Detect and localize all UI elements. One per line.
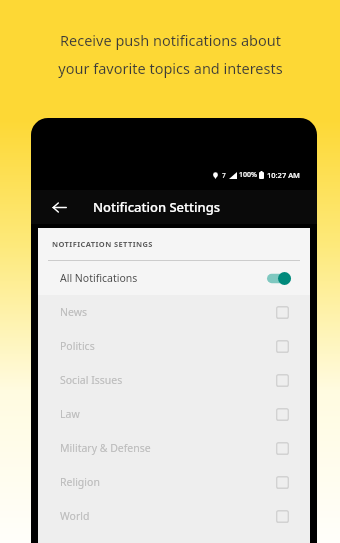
staticText: 7 bbox=[222, 171, 226, 180]
button[interactable]: Social Issues bbox=[38, 363, 310, 397]
staticText: Receive push notifications about bbox=[60, 30, 281, 50]
button[interactable]: Religion bbox=[38, 465, 310, 499]
button[interactable]: Back bbox=[47, 195, 71, 219]
staticText: World bbox=[60, 509, 90, 523]
button[interactable]: News bbox=[38, 295, 310, 329]
button[interactable]: All Notifications bbox=[38, 261, 310, 295]
staticText: NOTIFICATION SETTINGS bbox=[52, 239, 153, 249]
staticText: your favorite topics and interests bbox=[58, 58, 283, 78]
staticText: 10:27 AM bbox=[267, 170, 300, 180]
staticText: Law bbox=[60, 407, 80, 421]
staticText: Religion bbox=[60, 475, 100, 489]
staticText: Notification Settings bbox=[93, 198, 221, 216]
staticText: Politics bbox=[60, 339, 95, 353]
staticText: 100% bbox=[239, 170, 257, 180]
button[interactable]: Politics bbox=[38, 329, 310, 363]
staticText: All Notifications bbox=[60, 271, 138, 285]
button[interactable]: Law bbox=[38, 397, 310, 431]
staticText: Social Issues bbox=[60, 373, 123, 387]
button[interactable]: Military & Defense bbox=[38, 431, 310, 465]
button[interactable]: World bbox=[38, 499, 310, 533]
staticText: Military & Defense bbox=[60, 441, 151, 455]
staticText: News bbox=[60, 305, 87, 319]
